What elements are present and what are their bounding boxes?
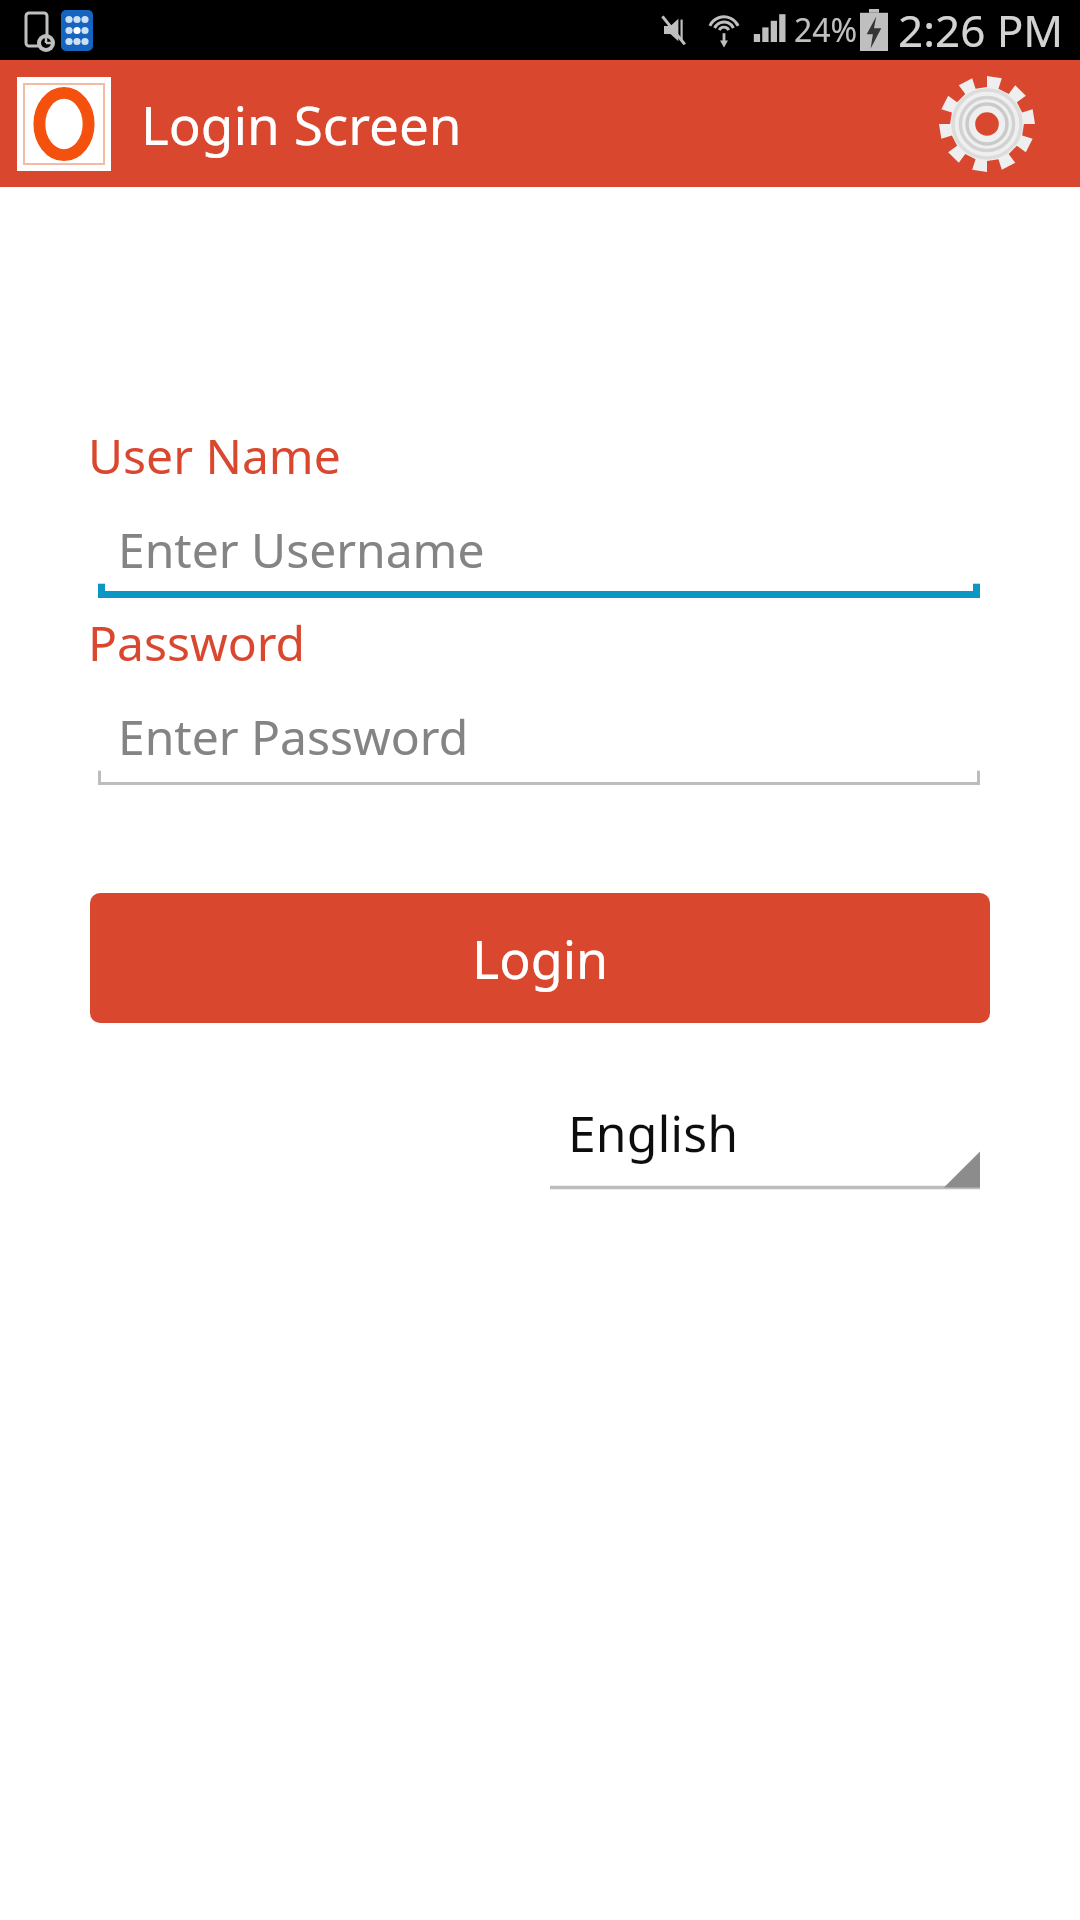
staticText: User Name: [88, 423, 341, 488]
button[interactable]: English: [550, 1099, 980, 1191]
button[interactable]: Enter Username: [98, 516, 980, 598]
staticText: Enter Username: [118, 517, 485, 582]
staticText: Login Screen: [141, 88, 462, 160]
button[interactable]: Login: [90, 893, 990, 1023]
staticText: Password: [88, 610, 306, 675]
button[interactable]: App logo: [23, 83, 105, 165]
button[interactable]: Enter Password: [98, 703, 980, 785]
staticText: English: [568, 1099, 739, 1167]
staticText: 2:26 PM: [898, 0, 1064, 60]
staticText: Enter Password: [118, 704, 469, 769]
button[interactable]: Settings: [932, 69, 1042, 179]
staticText: 24%: [794, 8, 858, 52]
staticText: Login: [472, 923, 609, 994]
